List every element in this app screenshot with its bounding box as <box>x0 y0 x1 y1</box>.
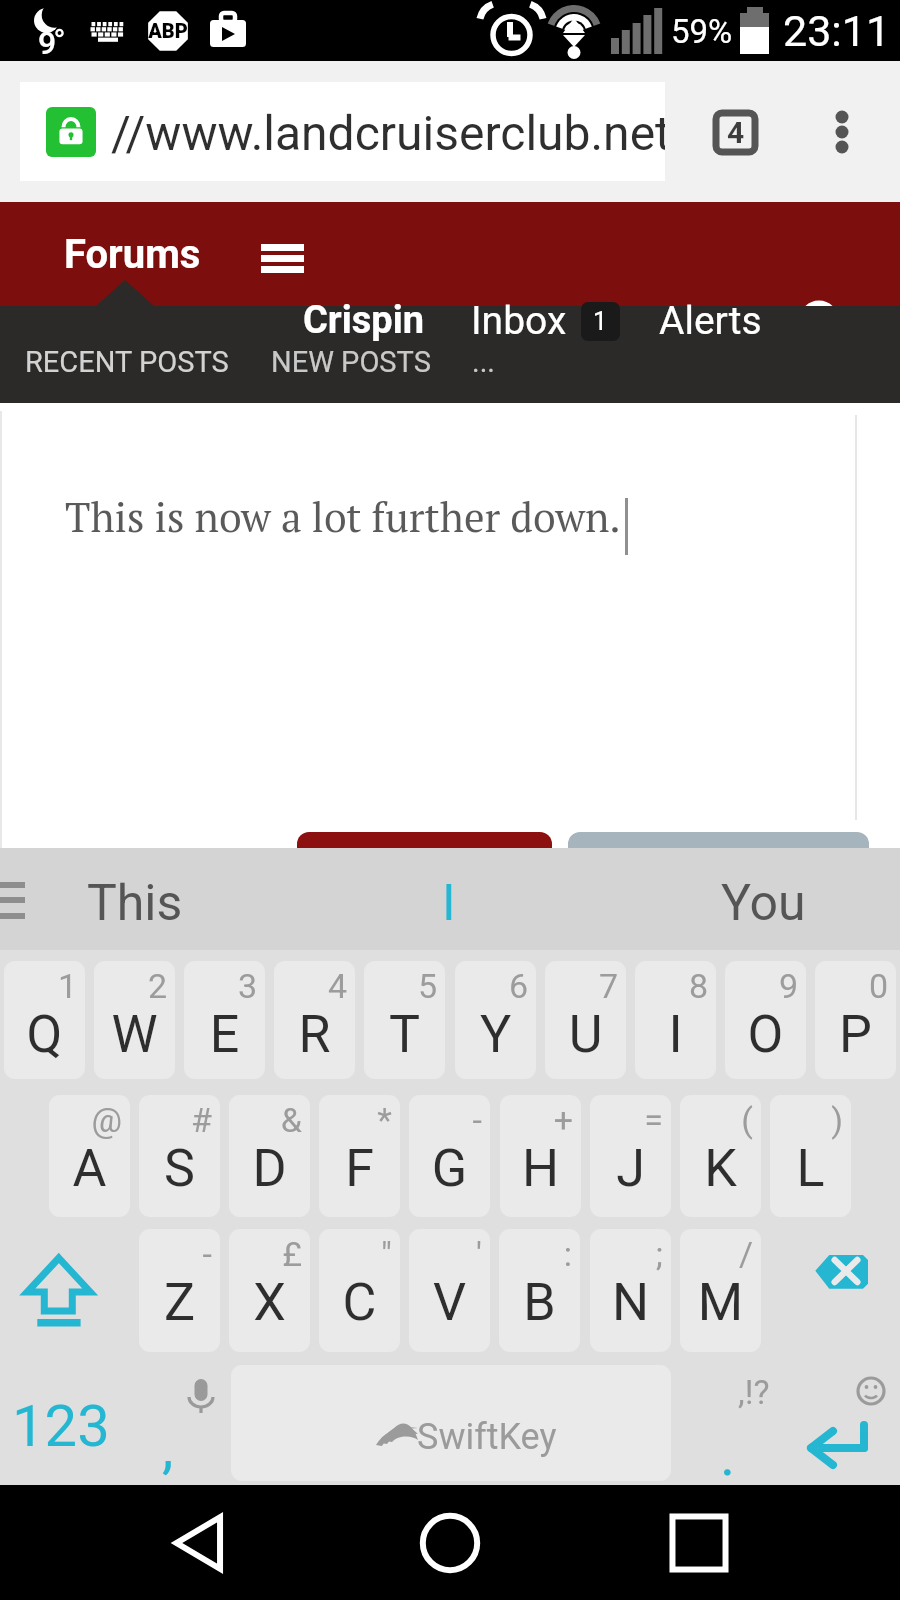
staticText: ; <box>590 1234 663 1274</box>
button[interactable]: 123 <box>0 1355 125 1480</box>
button[interactable]: B <box>499 1229 580 1352</box>
button[interactable]: F <box>319 1095 400 1217</box>
staticText: L <box>770 1138 851 1199</box>
staticText: R <box>274 1004 355 1065</box>
button[interactable]: V <box>409 1229 490 1352</box>
staticText: 8 <box>635 966 708 1006</box>
button[interactable]: T <box>364 961 445 1079</box>
staticText: 123 <box>12 1392 110 1460</box>
staticText: / <box>680 1234 753 1274</box>
staticText: X <box>229 1272 310 1333</box>
button[interactable]: N <box>590 1229 671 1352</box>
button[interactable]: Back <box>153 1495 249 1591</box>
staticText: V <box>409 1272 490 1333</box>
staticText: @ <box>49 1100 122 1140</box>
button[interactable]: Enter <box>786 1355 900 1480</box>
button[interactable]: , <box>131 1355 226 1480</box>
button[interactable]: O <box>725 961 806 1079</box>
button[interactable]: G <box>409 1095 490 1217</box>
staticText: . <box>720 1421 736 1489</box>
staticText: S <box>139 1138 220 1199</box>
button[interactable]: ,!? <box>676 1355 786 1480</box>
button[interactable]: //www.landcruiserclub.net/c <box>20 82 665 181</box>
staticText: U <box>545 1004 626 1065</box>
button[interactable]: I <box>635 961 716 1079</box>
staticText: 6 <box>455 966 528 1006</box>
button[interactable]: D <box>229 1095 310 1217</box>
button[interactable]: M <box>680 1229 761 1352</box>
button[interactable]: Q <box>4 961 85 1079</box>
button[interactable]: Space <box>231 1365 671 1481</box>
button[interactable]: E <box>184 961 265 1079</box>
button[interactable]: J <box>590 1095 671 1217</box>
staticText: 7 <box>545 966 618 1006</box>
button[interactable]: NEW POSTS <box>271 345 431 379</box>
staticText: W <box>94 1004 175 1065</box>
staticText: 23:11 <box>783 6 891 56</box>
button[interactable]: Forums <box>64 231 201 278</box>
staticText: * <box>319 1100 392 1140</box>
staticText: //www.landcruiserclub.net/c <box>111 105 665 161</box>
staticText: , <box>162 1413 174 1481</box>
staticText: D <box>229 1138 310 1199</box>
staticText: B <box>499 1272 580 1333</box>
staticText: K <box>680 1138 761 1199</box>
staticText: = <box>590 1100 663 1140</box>
staticText: 9 <box>36 24 58 62</box>
staticText: A <box>49 1138 130 1199</box>
button[interactable]: ... <box>472 345 495 379</box>
button[interactable]: W <box>94 961 175 1079</box>
button[interactable]: R <box>274 961 355 1079</box>
staticText: O <box>725 1004 806 1065</box>
staticText: M <box>680 1272 761 1333</box>
button[interactable]: 1 <box>581 302 620 341</box>
button[interactable]: Alerts <box>659 298 762 344</box>
staticText: Y <box>455 1004 536 1065</box>
button[interactable]: Inbox <box>471 298 567 344</box>
staticText: & <box>229 1100 302 1140</box>
button[interactable]: Home <box>402 1495 498 1591</box>
staticText: N <box>590 1272 671 1333</box>
staticText: ' <box>409 1234 482 1274</box>
staticText: ,!? <box>738 1372 770 1412</box>
button[interactable]: Recent apps <box>651 1495 747 1591</box>
staticText: This <box>87 874 183 933</box>
button[interactable]: I <box>330 848 620 950</box>
staticText: 9 <box>725 966 798 1006</box>
button[interactable]: RECENT POSTS <box>25 345 229 379</box>
button[interactable]: S <box>139 1095 220 1217</box>
button[interactable]: You <box>620 848 900 950</box>
staticText: This is now a lot further down. <box>65 489 621 543</box>
staticText: E <box>184 1004 265 1065</box>
button[interactable]: C <box>319 1229 400 1352</box>
button[interactable]: H <box>500 1095 581 1217</box>
button[interactable]: P <box>815 961 896 1079</box>
staticText: J <box>590 1138 671 1199</box>
button[interactable]: Menu <box>261 244 304 271</box>
staticText: C <box>319 1272 400 1333</box>
staticText: 4 <box>274 966 347 1006</box>
staticText: - <box>139 1234 212 1274</box>
button[interactable]: A <box>49 1095 130 1217</box>
button[interactable]: Z <box>139 1229 220 1352</box>
staticText: F <box>319 1138 400 1199</box>
staticText: - <box>409 1100 482 1140</box>
button[interactable]: Crispin <box>303 298 425 343</box>
button[interactable]: K <box>680 1095 761 1217</box>
button[interactable]: X <box>229 1229 310 1352</box>
staticText: 3 <box>184 966 257 1006</box>
button[interactable]: Open tabs <box>713 110 758 155</box>
button[interactable]: U <box>545 961 626 1079</box>
staticText: 4 <box>727 115 745 150</box>
button[interactable]: Shift <box>0 1229 135 1352</box>
button[interactable]: Backspace <box>780 1229 900 1352</box>
staticText: ( <box>680 1100 753 1140</box>
button[interactable]: Y <box>455 961 536 1079</box>
button[interactable]: More options <box>812 87 872 177</box>
staticText: 59% <box>671 12 733 51</box>
staticText: You <box>721 874 806 933</box>
button[interactable]: This <box>40 848 330 950</box>
staticText: 1 <box>593 307 608 336</box>
button[interactable]: L <box>770 1095 851 1217</box>
staticText: T <box>364 1004 445 1065</box>
